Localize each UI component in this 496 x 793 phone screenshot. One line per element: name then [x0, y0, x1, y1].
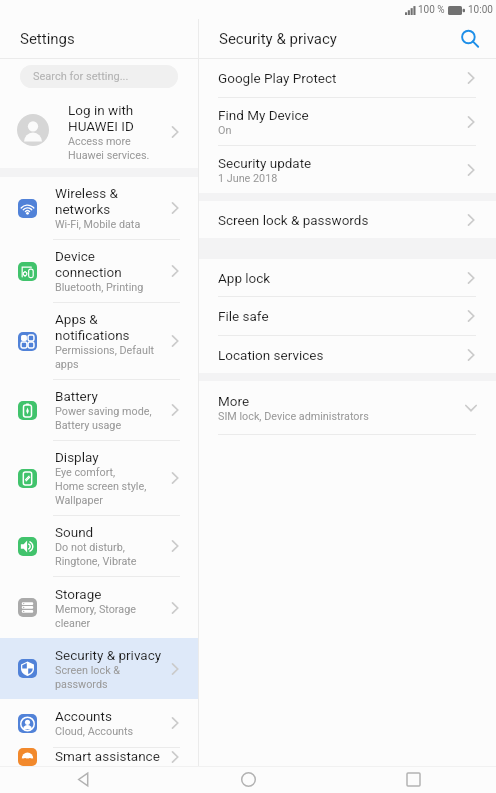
button[interactable]: Google Play Protect	[199, 59, 496, 97]
button[interactable]: App lock	[199, 259, 496, 296]
staticText: Security & privacy	[55, 647, 162, 663]
staticText: HUAWEI ID	[68, 118, 134, 134]
button[interactable]: Storage	[0, 577, 198, 638]
staticText: 1 June 2018	[218, 171, 278, 185]
staticText: On	[218, 123, 232, 137]
button[interactable]: Recents	[331, 766, 496, 793]
button[interactable]: Search	[458, 27, 482, 51]
staticText: Settings	[20, 30, 75, 48]
staticText: Location services	[218, 347, 324, 363]
staticText: Do not disturb, Ringtone, Vibrate	[55, 540, 137, 568]
staticText: Access more	[68, 134, 131, 148]
staticText: Google Play Protect	[218, 70, 337, 86]
staticText: File safe	[218, 308, 269, 324]
staticText: 10:00	[468, 4, 493, 16]
staticText: Accounts	[55, 708, 112, 724]
staticText: Storage	[55, 586, 102, 602]
button[interactable]: Location services	[199, 336, 496, 373]
staticText: Screen lock & passwords	[218, 212, 369, 228]
staticText: Device connection	[55, 248, 122, 280]
staticText: Sound	[55, 524, 94, 540]
staticText: Power saving mode, Battery usage	[55, 404, 152, 432]
staticText: Wireless & networks	[55, 185, 118, 217]
button[interactable]: Battery	[0, 380, 198, 440]
staticText: Permissions, Default apps	[55, 343, 155, 371]
staticText: Memory, Storage cleaner	[55, 602, 136, 630]
staticText: App lock	[218, 270, 271, 286]
staticText: Apps & notifications	[55, 311, 130, 343]
button[interactable]: Display	[0, 441, 198, 515]
button[interactable]: Wireless & networks	[0, 177, 198, 239]
staticText: Battery	[55, 388, 98, 404]
button[interactable]: Search for setting...	[20, 65, 178, 88]
staticText: Eye comfort, Home screen style, Wallpape…	[55, 465, 147, 507]
button[interactable]: Accounts	[0, 699, 198, 747]
button[interactable]: Security update	[199, 146, 496, 193]
button[interactable]: Apps & notifications	[0, 303, 198, 379]
staticText: Log in with	[68, 102, 134, 118]
button[interactable]: Find My Device	[199, 98, 496, 145]
button[interactable]: Log in with	[0, 88, 198, 168]
button[interactable]: Back	[0, 766, 166, 793]
staticText: Wi-Fi, Mobile data	[55, 217, 141, 231]
button[interactable]: Screen lock & passwords	[199, 201, 496, 238]
staticText: Search for setting...	[33, 70, 129, 83]
button[interactable]: Device connection	[0, 240, 198, 302]
button[interactable]: File safe	[199, 297, 496, 335]
staticText: 100 %	[418, 4, 445, 16]
staticText: Security update	[218, 155, 312, 171]
staticText: Bluetooth, Printing	[55, 280, 144, 294]
button[interactable]: Security & privacy	[0, 638, 198, 699]
staticText: Smart assistance	[55, 748, 160, 764]
button[interactable]: More	[199, 381, 496, 434]
staticText: Screen lock & passwords	[55, 663, 121, 691]
staticText: Huawei services.	[68, 148, 150, 162]
staticText: Find My Device	[218, 107, 309, 123]
staticText: Security & privacy	[219, 30, 337, 48]
staticText: More	[218, 393, 250, 409]
button[interactable]: Smart assistance	[0, 748, 198, 766]
staticText: Cloud, Accounts	[55, 724, 134, 738]
button[interactable]: Home	[166, 766, 331, 793]
staticText: SIM lock, Device administrators	[218, 409, 369, 423]
staticText: Display	[55, 449, 99, 465]
button[interactable]: Sound	[0, 516, 198, 576]
